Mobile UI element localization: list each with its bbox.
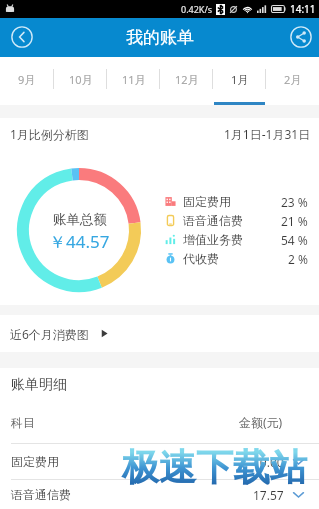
staticText: 2月 [284,72,302,87]
staticText: 语音通信费 [183,213,243,227]
button[interactable]: 9月 [0,57,54,105]
staticText: 账单明细 [11,376,67,394]
staticText: 54 % [281,232,308,246]
button[interactable]: 11月 [107,57,160,105]
staticText: 1月 [231,72,249,87]
staticText: 10.00 [253,454,284,470]
button[interactable]: 2月 [266,57,319,105]
staticText: 账单总额 [53,211,107,228]
staticText: 10月 [69,72,93,87]
staticText: 1月比例分析图 [10,126,89,142]
staticText: 增值业务费 [183,232,243,246]
button[interactable]: Share [285,21,317,53]
button[interactable]: 语音通信费 [0,480,319,509]
button[interactable]: Back [6,21,38,53]
staticText: 语音通信费 [11,487,71,502]
staticText: 极速下载站 [122,444,307,491]
button[interactable]: 近6个月消费图 [0,315,319,352]
staticText: 固定费用 [11,454,59,469]
staticText: 17.57 [253,487,284,503]
button[interactable]: 1月 [213,57,266,105]
staticText: 23 % [281,194,308,208]
staticText: 固定费用 [183,194,231,208]
staticText: 我的账单 [126,27,194,48]
staticText: ￥44.57 [49,230,110,253]
staticText: 11月 [122,72,146,87]
staticText: 9月 [18,72,36,87]
staticText: 金额(元) [239,414,283,430]
staticText: 21 % [281,213,308,227]
staticText: 代收费 [183,251,219,265]
staticText: 近6个月消费图 [10,326,89,342]
staticText: 14:11 [290,2,316,16]
button[interactable]: 12月 [160,57,213,105]
staticText: 科目 [11,415,35,430]
button[interactable]: 固定费用 [0,444,319,479]
staticText: 12月 [175,72,199,87]
staticText: 0.42K/s [181,3,213,15]
button[interactable]: 10月 [54,57,107,105]
staticText: 1月1日-1月31日 [224,126,311,142]
staticText: 2 % [288,251,308,265]
